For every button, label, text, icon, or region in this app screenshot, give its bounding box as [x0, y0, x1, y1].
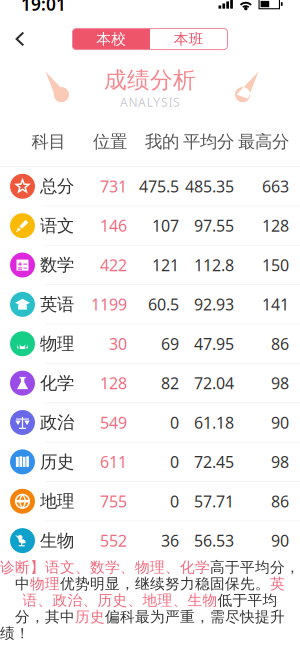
staticText: 政治	[40, 412, 74, 433]
staticText: 141	[262, 294, 289, 315]
staticText: 本班	[174, 30, 204, 48]
staticText: 552	[100, 530, 127, 551]
staticText: 总分	[40, 176, 74, 197]
staticText: 57.71	[194, 491, 234, 512]
staticText: 56.53	[194, 530, 234, 551]
staticText: 英语	[40, 294, 74, 315]
staticText: 0	[170, 412, 179, 433]
staticText: 61.18	[194, 412, 234, 433]
staticText: 中	[15, 575, 30, 593]
staticText: 生物	[40, 530, 74, 551]
staticText: 90	[271, 412, 289, 433]
staticText: 1199	[91, 294, 127, 315]
staticText: 86	[271, 491, 289, 512]
staticText: ANALYSIS	[120, 94, 180, 110]
staticText: 72.45	[194, 451, 234, 472]
staticText: 422	[100, 254, 127, 276]
staticText: 19:01	[21, 0, 66, 15]
staticText: 72.04	[194, 372, 234, 394]
button[interactable]: 物理	[0, 324, 300, 363]
staticText: 偏科最为严重，需尽快提升	[105, 608, 285, 626]
staticText: 物理	[30, 575, 60, 593]
staticText: 平均分	[183, 131, 234, 152]
staticText: 语、政治、历史、地理、生物	[22, 591, 217, 609]
staticText: 历史	[75, 608, 105, 626]
staticText: 0	[170, 491, 179, 512]
button[interactable]: 化学	[0, 364, 300, 402]
staticText: 分，其中	[15, 608, 75, 626]
button[interactable]: 地理	[0, 482, 300, 521]
staticText: 128	[100, 372, 127, 394]
staticText: 我的	[145, 131, 179, 152]
staticText: 731	[100, 176, 127, 197]
staticText: 112.8	[194, 254, 234, 276]
staticText: 本校	[96, 30, 126, 48]
staticText: 英	[270, 575, 285, 593]
staticText: 98	[271, 451, 289, 472]
staticText: 成绩分析	[104, 66, 196, 94]
staticText: 优势明显，继续努力稳固保先。	[60, 575, 270, 593]
staticText: 69	[161, 333, 179, 354]
staticText: 92.93	[194, 294, 234, 315]
button[interactable]: 生物	[0, 521, 300, 560]
staticText: 地理	[40, 491, 74, 512]
staticText: 90	[271, 530, 289, 551]
staticText: 语文	[40, 215, 74, 236]
staticText: 30	[109, 333, 127, 354]
staticText: 0	[170, 451, 179, 472]
staticText: 97.55	[194, 215, 234, 236]
staticText: 物理	[40, 333, 74, 354]
staticText: 【诊断】	[0, 558, 45, 576]
staticText: 最高分	[238, 131, 289, 152]
staticText: 485.35	[185, 176, 234, 197]
staticText: 位置	[93, 131, 127, 152]
staticText: 150	[262, 254, 289, 276]
button[interactable]: 英语	[0, 285, 300, 324]
staticText: 146	[100, 215, 127, 236]
staticText: 化学	[40, 372, 74, 394]
staticText: 549	[100, 412, 127, 433]
button[interactable]: 语文	[0, 206, 300, 245]
button[interactable]: 政治	[0, 403, 300, 442]
staticText: 语文、数学、物理、化学	[45, 558, 210, 576]
staticText: 科目	[31, 131, 65, 152]
staticText: 47.95	[194, 333, 234, 354]
staticText: 107	[152, 215, 179, 236]
button[interactable]: 本班	[150, 29, 227, 50]
staticText: 82	[161, 372, 179, 394]
button[interactable]: 历史	[0, 442, 300, 481]
staticText: 755	[100, 491, 127, 512]
staticText: 历史	[40, 451, 74, 472]
button[interactable]: 返回	[4, 22, 36, 56]
staticText: 86	[271, 333, 289, 354]
staticText: 663	[262, 176, 289, 197]
button[interactable]: 总分	[0, 167, 300, 206]
staticText: 121	[152, 254, 179, 276]
staticText: 128	[262, 215, 289, 236]
staticText: 475.5	[139, 176, 179, 197]
staticText: 数学	[40, 254, 74, 276]
staticText: 98	[271, 372, 289, 394]
staticText: 高于平均分，其	[210, 558, 300, 576]
staticText: 成绩！	[0, 624, 30, 642]
staticText: 36	[161, 530, 179, 551]
button[interactable]: 数学	[0, 246, 300, 284]
staticText: 低于平均	[217, 591, 277, 609]
staticText: 60.5	[148, 294, 179, 315]
staticText: 611	[100, 451, 127, 472]
button[interactable]: 本校	[72, 29, 150, 50]
